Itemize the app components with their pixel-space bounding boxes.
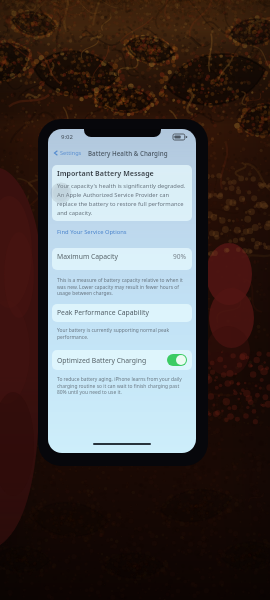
staticText: Your battery is currently supporting nor… (57, 327, 187, 340)
staticText: 90% (173, 252, 187, 261)
button[interactable]: Maximum Capacity (52, 248, 192, 270)
staticText: This is a measure of battery capacity re… (57, 277, 187, 296)
button[interactable]: Important Battery Message (52, 165, 192, 221)
button[interactable] (167, 354, 187, 366)
button[interactable]: Peak Performance Capability (52, 304, 192, 322)
button[interactable]: Settings (52, 147, 84, 159)
staticText: Optimized Battery Charging (57, 356, 147, 365)
staticText: Battery Health & Charging (88, 149, 168, 157)
staticText: Find Your Service Options (57, 228, 127, 236)
button[interactable]: Find Your Service Options (48, 227, 196, 237)
staticText: 9:02 (61, 133, 73, 141)
staticText: Settings (60, 149, 82, 157)
staticText: Important Battery Message (57, 169, 154, 179)
button[interactable]: Optimized Battery Charging (52, 350, 192, 370)
staticText: Your capacity's health is significantly … (57, 182, 187, 216)
staticText: Maximum Capacity (57, 252, 119, 261)
staticText: Peak Performance Capability (57, 308, 149, 317)
staticText: To reduce battery aging, iPhone learns f… (57, 376, 187, 395)
